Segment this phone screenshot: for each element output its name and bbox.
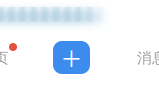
staticText: +: [61, 34, 81, 80]
staticText: 消息: [137, 49, 159, 67]
button[interactable]: 消息: [138, 34, 159, 67]
button[interactable]: 首页: [0, 34, 8, 67]
staticText: 首页: [0, 49, 9, 67]
button[interactable]: New post: [53, 41, 90, 74]
